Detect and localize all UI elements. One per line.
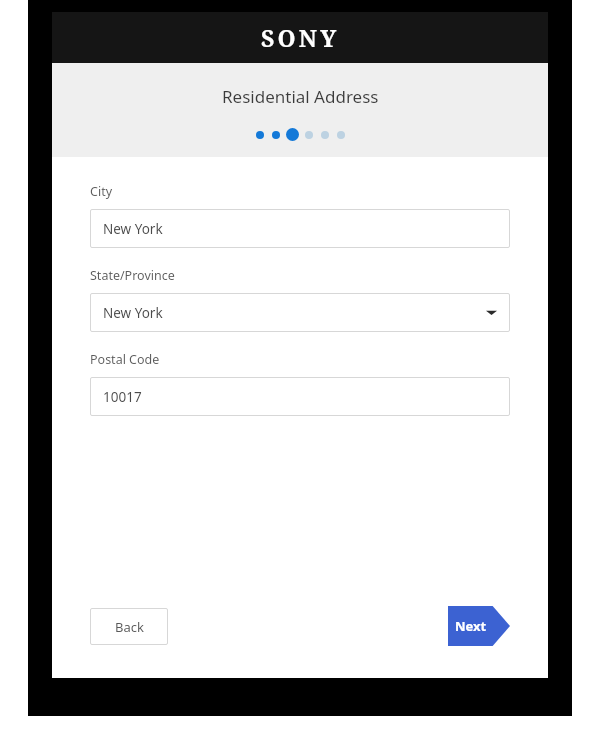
button[interactable]: 10017 <box>90 377 510 416</box>
button[interactable]: Next <box>448 606 510 646</box>
staticText: Residential Address <box>222 85 379 108</box>
button[interactable]: Back <box>90 608 168 645</box>
staticText: SONY <box>261 22 340 53</box>
staticText: 10017 <box>103 388 142 406</box>
staticText: Postal Code <box>90 351 160 368</box>
staticText: State/Province <box>90 267 175 284</box>
staticText: Back <box>115 618 144 636</box>
staticText: New York <box>103 220 163 238</box>
button[interactable]: New York <box>90 209 510 248</box>
staticText: New York <box>103 304 163 322</box>
staticText: Next <box>455 617 487 635</box>
button[interactable]: New York <box>90 293 510 332</box>
staticText: City <box>90 183 113 200</box>
